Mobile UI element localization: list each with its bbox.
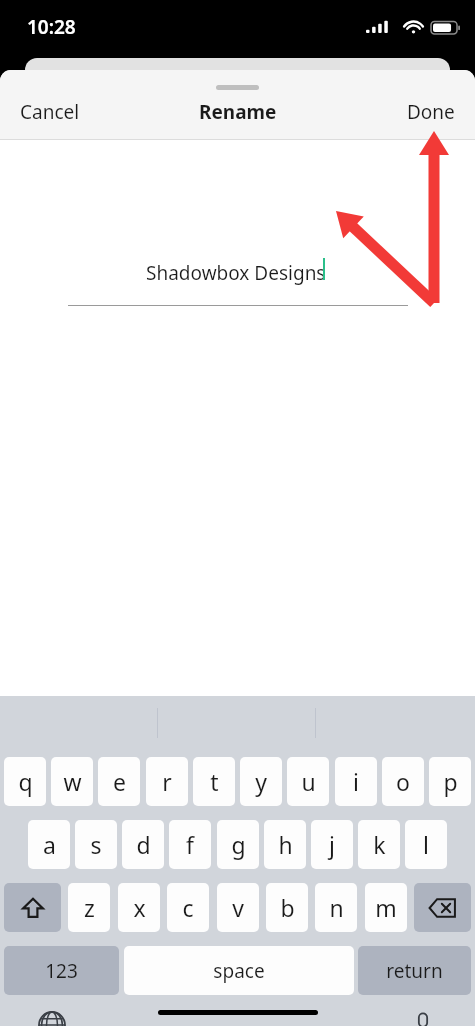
button[interactable]: z [68, 883, 110, 932]
button[interactable]: g [217, 820, 259, 869]
staticText: p [443, 766, 458, 797]
staticText: o [396, 766, 410, 797]
staticText: return [386, 958, 443, 984]
staticText: e [113, 766, 126, 797]
button[interactable]: i [335, 757, 377, 806]
staticText: f [186, 829, 194, 860]
button[interactable]: Done [387, 93, 475, 131]
button[interactable]: m [365, 883, 407, 932]
staticText: y [255, 766, 267, 797]
staticText: space [213, 958, 265, 984]
staticText: 10:28 [27, 14, 76, 40]
staticText: u [301, 766, 316, 797]
staticText: w [63, 766, 82, 797]
button[interactable]: Backspace [414, 883, 471, 932]
staticText: s [90, 829, 102, 860]
staticText: 123 [45, 958, 78, 984]
button[interactable]: Change keyboard language [30, 1009, 74, 1026]
staticText: j [329, 829, 335, 860]
staticText: n [329, 892, 344, 923]
button[interactable]: l [405, 820, 447, 869]
button[interactable]: Dictation [401, 1009, 445, 1026]
button[interactable]: u [287, 757, 329, 806]
staticText: k [373, 829, 386, 860]
staticText: g [231, 829, 246, 860]
button[interactable]: c [167, 883, 209, 932]
staticText: r [162, 766, 172, 797]
staticText: q [18, 766, 33, 797]
button[interactable]: q [4, 757, 46, 806]
staticText: i [353, 766, 359, 797]
button[interactable]: 123 [4, 946, 119, 995]
button[interactable]: r [146, 757, 188, 806]
button[interactable]: e [98, 757, 140, 806]
staticText: x [133, 892, 146, 923]
staticText: a [43, 829, 56, 860]
staticText: Done [407, 99, 455, 125]
button[interactable]: space [124, 946, 354, 995]
staticText: m [375, 892, 397, 923]
staticText: d [136, 829, 151, 860]
button[interactable]: j [311, 820, 353, 869]
button[interactable]: return [358, 946, 471, 995]
button[interactable]: y [240, 757, 282, 806]
staticText: v [232, 892, 244, 923]
button[interactable]: f [169, 820, 211, 869]
staticText: t [210, 766, 219, 797]
button[interactable]: n [315, 883, 357, 932]
staticText: Rename [199, 99, 277, 125]
staticText: c [182, 892, 194, 923]
staticText: l [423, 829, 429, 860]
button[interactable]: Cancel [0, 93, 100, 131]
button[interactable]: Shift [4, 883, 61, 932]
staticText: h [278, 829, 293, 860]
button[interactable]: d [122, 820, 164, 869]
button[interactable]: p [429, 757, 471, 806]
button[interactable]: h [264, 820, 306, 869]
staticText: b [280, 892, 295, 923]
staticText: Shadowbox Designs [146, 260, 326, 286]
button[interactable]: o [382, 757, 424, 806]
button[interactable]: v [217, 883, 259, 932]
button[interactable]: a [28, 820, 70, 869]
button[interactable]: b [266, 883, 308, 932]
button[interactable]: s [75, 820, 117, 869]
button[interactable]: x [118, 883, 160, 932]
staticText: z [84, 892, 95, 923]
button[interactable]: k [358, 820, 400, 869]
button[interactable]: t [193, 757, 235, 806]
staticText: Cancel [20, 99, 80, 125]
button[interactable]: w [51, 757, 93, 806]
